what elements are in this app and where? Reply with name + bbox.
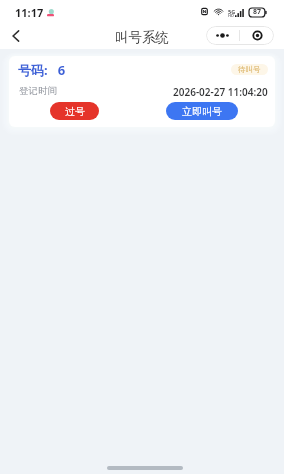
staticText: 5G: [228, 8, 236, 15]
staticText: 号码: 6: [18, 61, 66, 79]
staticText: 待叫号: [238, 65, 261, 74]
staticText: HD: [228, 13, 234, 18]
button[interactable]: 过号: [50, 102, 99, 120]
button[interactable]: Back: [7, 27, 24, 44]
staticText: 立即叫号: [182, 105, 222, 118]
button[interactable]: More options: [206, 26, 239, 45]
staticText: 87: [253, 7, 262, 17]
button[interactable]: 立即叫号: [166, 102, 238, 120]
staticText: 11:17: [15, 5, 44, 20]
staticText: 叫号系统: [115, 29, 169, 46]
staticText: 登记时间: [19, 85, 57, 97]
button[interactable]: 号码: 6: [9, 56, 275, 127]
staticText: 过号: [65, 105, 85, 118]
staticText: 2026-02-27 11:04:20: [173, 85, 268, 99]
button[interactable]: Close mini program: [240, 26, 274, 45]
